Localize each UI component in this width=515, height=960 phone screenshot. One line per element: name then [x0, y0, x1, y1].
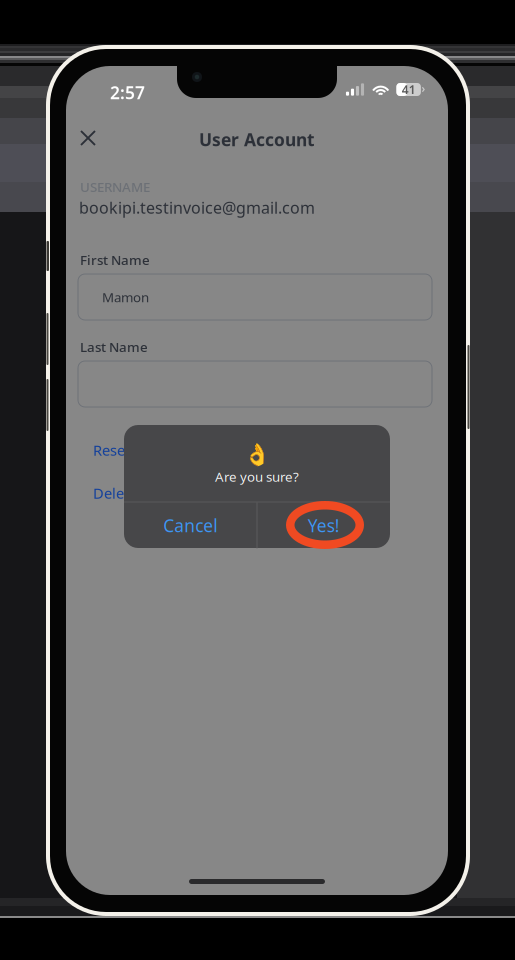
staticText: 2:57 [110, 81, 145, 104]
button[interactable]: Cancel [124, 502, 256, 548]
staticText: 👌 [243, 443, 270, 467]
button[interactable]: Close [66, 116, 110, 160]
staticText: First Name [80, 251, 150, 269]
staticText: Last Name [80, 338, 148, 356]
button[interactable]: Reset Password [93, 438, 201, 462]
button[interactable]: Delete Account [93, 481, 196, 505]
staticText: Reset Password [93, 440, 201, 460]
staticText: bookipi.testinvoice@gmail.com [79, 197, 315, 218]
staticText: Are you sure? [215, 468, 299, 485]
staticText: Mamon [102, 288, 149, 306]
staticText: Delete Account [93, 483, 196, 503]
staticText: Yes! [308, 514, 340, 537]
staticText: Cancel [163, 514, 217, 537]
staticText: USERNAME [80, 178, 150, 196]
staticText: 41 [402, 81, 416, 97]
staticText: User Account [199, 128, 315, 151]
button[interactable]: Yes! [257, 502, 390, 548]
